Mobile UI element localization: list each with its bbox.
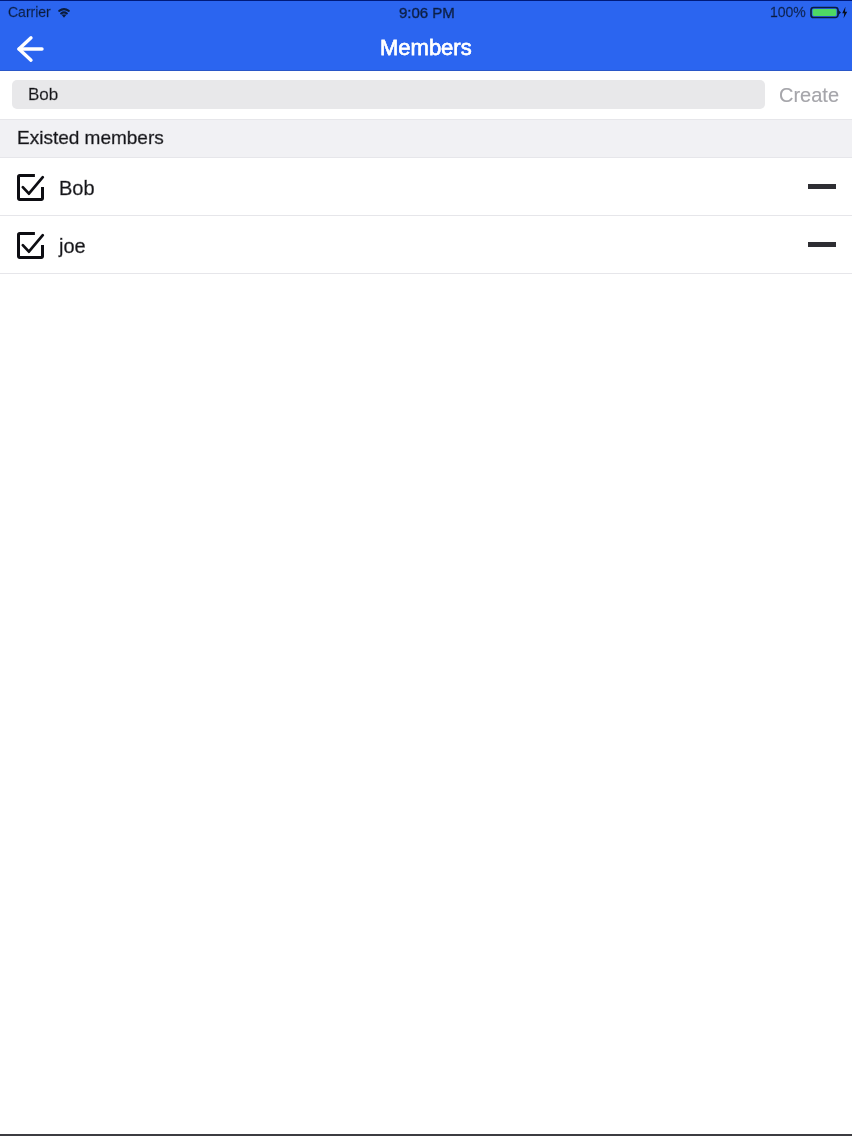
staticText: 100% bbox=[770, 4, 806, 20]
staticText: Bob bbox=[59, 177, 95, 199]
staticText: 9:06 PM bbox=[399, 4, 455, 21]
staticText: joe bbox=[59, 235, 86, 257]
button[interactable]: Remove Bob bbox=[794, 158, 848, 215]
button[interactable]: Bob bbox=[12, 80, 765, 109]
staticText: joe bbox=[59, 235, 86, 257]
staticText: 9:06 PM bbox=[399, 4, 455, 21]
staticText: Create bbox=[779, 84, 840, 106]
staticText: Carrier bbox=[8, 4, 51, 20]
button[interactable]: Back bbox=[0, 24, 58, 71]
staticText: Members bbox=[380, 35, 472, 60]
staticText: Members bbox=[380, 35, 472, 60]
staticText: Bob bbox=[28, 85, 59, 104]
staticText: Existed members bbox=[17, 127, 164, 148]
other: Selected bbox=[17, 174, 44, 201]
staticText: Bob bbox=[59, 177, 95, 199]
staticText: Existed members bbox=[17, 127, 164, 148]
button[interactable]: Selected bbox=[0, 158, 852, 216]
other: Selected bbox=[17, 232, 44, 259]
staticText: Bob bbox=[28, 85, 59, 104]
staticText: Carrier bbox=[8, 4, 51, 20]
button[interactable]: Create bbox=[765, 71, 852, 119]
button[interactable]: Remove joe bbox=[794, 216, 848, 273]
staticText: 100% bbox=[770, 4, 806, 20]
button[interactable]: Selected bbox=[0, 216, 852, 274]
